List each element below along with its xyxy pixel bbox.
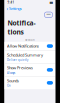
staticText: Allow Notifications (7, 43, 39, 49)
button[interactable]: ‹ (6, 5, 22, 12)
staticText: ▮▮▮ (49, 1, 52, 4)
staticText: Section (25, 38, 35, 42)
staticText: Notifications (7, 18, 35, 36)
staticText: Scheduled Summary (7, 52, 43, 57)
staticText: 9:41 (7, 1, 14, 4)
staticText: Settings (9, 6, 22, 11)
button[interactable]: •••• (44, 12, 52, 17)
staticText: ‹ (6, 5, 8, 12)
staticText: Show Previews (7, 65, 33, 70)
staticText: Deliver quietly (7, 58, 28, 62)
staticText: On (7, 84, 11, 87)
staticText: •••• (46, 13, 50, 16)
staticText: Always (7, 71, 15, 75)
staticText: Sounds (7, 78, 19, 83)
